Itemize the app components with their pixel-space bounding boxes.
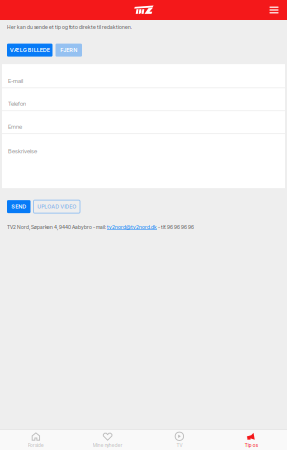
button[interactable]: tv2nord@tv2nord.dk [107,224,157,230]
staticText: Emne [8,123,22,130]
staticText: E-mail [8,77,23,84]
staticText: Telefon [8,100,26,107]
staticText: - tlf. 96 96 96 96 [157,224,194,230]
button[interactable]: SEND [7,200,30,213]
button[interactable]: Mine nyheder [72,430,144,450]
staticText: TV2 Nord, Søparken 4, 9440 Aabybro - mai… [7,224,107,230]
button[interactable]: Menu [266,1,282,19]
staticText: tv2nord@tv2nord.dk [107,224,157,230]
button[interactable]: FJERN [55,44,82,57]
staticText: Her kan du sende et tip og foto direkte … [7,24,132,30]
staticText: VÆLG BILLEDE [10,47,50,53]
staticText: Mine nyheder [93,442,123,448]
staticText: Beskrivelse [8,147,37,155]
staticText: FJERN [60,47,77,53]
button[interactable]: VÆLG BILLEDE [7,44,52,57]
staticText: Forside [28,442,44,448]
button[interactable]: TV [143,430,215,450]
staticText: UPLOAD VIDEO [37,203,76,210]
button[interactable]: Tip os [215,430,287,450]
button[interactable]: UPLOAD VIDEO [33,200,80,213]
button[interactable]: Forside [0,430,72,450]
staticText: Tip os [245,442,258,448]
staticText: TV [176,442,182,448]
staticText: SEND [11,203,26,210]
